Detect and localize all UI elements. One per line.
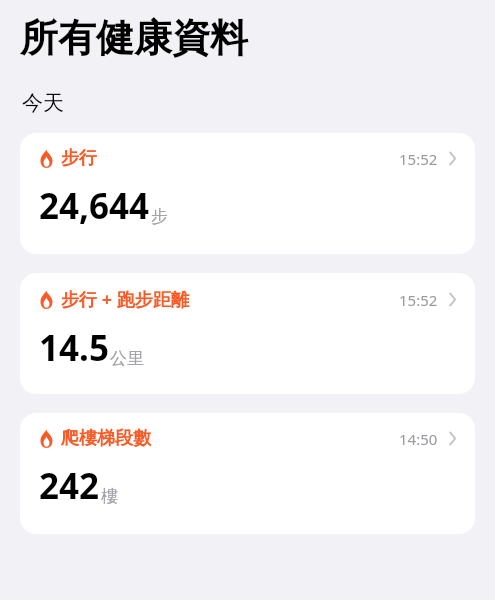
staticText: 14.5 [39, 324, 109, 372]
staticText: 所有健康資料 [20, 14, 248, 62]
button[interactable]: 步行 [20, 133, 475, 254]
staticText: 步 [151, 206, 168, 227]
staticText: 公里 [110, 348, 144, 369]
staticText: 步行 [61, 147, 97, 170]
staticText: 今天 [22, 90, 64, 116]
staticText: 15:52 [399, 149, 438, 169]
staticText: 14:50 [399, 429, 438, 449]
button[interactable]: 爬樓梯段數 [20, 413, 475, 534]
button[interactable]: 步行 + 跑步距離 [20, 273, 475, 394]
staticText: 步行 + 跑步距離 [61, 287, 189, 312]
staticText: 242 [39, 462, 100, 510]
staticText: 24,644 [39, 182, 150, 230]
staticText: 爬樓梯段數 [61, 427, 151, 450]
staticText: 樓 [101, 486, 118, 507]
staticText: 15:52 [399, 290, 438, 310]
